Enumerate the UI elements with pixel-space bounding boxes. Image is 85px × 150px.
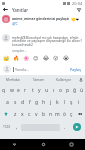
staticText: y <box>38 87 41 94</box>
staticText: Paylaş <box>70 67 81 72</box>
staticText: x <box>21 111 24 118</box>
button[interactable]: k <box>54 96 61 108</box>
staticText: ü <box>80 87 84 94</box>
staticText: 20:04 <box>72 1 83 6</box>
button[interactable]: Back <box>2 6 9 13</box>
button[interactable]: Send <box>69 120 85 134</box>
button[interactable]: z <box>11 108 19 120</box>
staticText: 🔥 <box>13 55 20 61</box>
staticText: z <box>14 111 17 118</box>
button[interactable]: Recents <box>57 139 85 150</box>
button[interactable]: , <box>12 120 21 134</box>
staticText: ç <box>70 111 73 118</box>
button[interactable]: j <box>47 96 54 108</box>
staticText: 😊 <box>33 55 39 61</box>
staticText: l <box>64 99 66 106</box>
button[interactable]: Home <box>29 139 57 150</box>
button[interactable]: Merhaba <box>0 75 26 84</box>
button[interactable]: Backspace <box>75 108 85 120</box>
staticText: Yanıtla... <box>15 67 30 72</box>
staticText: ı <box>53 87 55 94</box>
button[interactable]: Reaction <box>21 53 31 63</box>
button[interactable]: Reaction <box>41 53 51 63</box>
button[interactable]: Kullanıyor <box>51 75 76 84</box>
button[interactable]: Reaction <box>1 53 11 63</box>
button[interactable]: Back <box>0 139 29 150</box>
button[interactable]: ı <box>50 84 57 96</box>
button[interactable]: Reaction <box>51 53 61 63</box>
staticText: 😮 <box>53 55 59 61</box>
button[interactable]: ş <box>68 96 75 108</box>
button[interactable]: w <box>8 84 15 96</box>
staticText: b <box>42 111 46 118</box>
button[interactable]: Tamam <box>26 75 51 84</box>
button[interactable]: a <box>3 96 11 108</box>
button[interactable]: q <box>0 84 8 96</box>
button[interactable]: r <box>22 84 29 96</box>
button[interactable]: Reaction <box>61 53 71 63</box>
staticText: , <box>16 124 18 131</box>
button[interactable]: v <box>33 108 40 120</box>
button[interactable]: f <box>26 96 33 108</box>
button[interactable]: ü <box>78 84 85 96</box>
button[interactable]: o <box>57 84 64 96</box>
staticText: 👑 <box>3 55 10 61</box>
button[interactable]: d <box>19 96 26 108</box>
button[interactable]: ö <box>61 108 68 120</box>
staticText: e <box>17 87 20 94</box>
staticText: r <box>24 87 27 94</box>
button[interactable]: n <box>47 108 54 120</box>
staticText: q <box>2 87 6 94</box>
staticText: t <box>32 87 34 94</box>
staticText: anime_mimar gönderinizi paylaştı <box>12 16 70 21</box>
button[interactable]: Reaction <box>11 53 21 63</box>
button[interactable]: i <box>75 96 82 108</box>
staticText: v <box>35 111 38 118</box>
button[interactable]: ğ <box>71 84 78 96</box>
staticText: p <box>66 87 70 94</box>
button[interactable]: Voice input <box>76 75 85 84</box>
button[interactable]: ç <box>68 108 75 120</box>
staticText: m <box>55 111 60 118</box>
staticText: k <box>56 99 59 106</box>
button[interactable]: s <box>11 96 19 108</box>
button[interactable]: u <box>43 84 50 96</box>
staticText: 😂 <box>43 55 50 61</box>
button[interactable]: b <box>40 108 47 120</box>
staticText: ö <box>63 111 67 118</box>
button[interactable]: Filter <box>75 6 82 13</box>
button[interactable]: Reaction <box>31 53 41 63</box>
button[interactable]: c <box>26 108 33 120</box>
staticText: o <box>59 87 63 94</box>
staticText: 4J'C <box>12 22 18 26</box>
staticText: Kullanıyor <box>56 78 72 82</box>
staticText: s <box>14 99 17 106</box>
button[interactable]: h <box>40 96 47 108</box>
staticText: ?123 <box>3 125 10 129</box>
button[interactable]: g <box>33 96 40 108</box>
button[interactable]: . <box>60 120 69 134</box>
staticText: u <box>45 87 49 94</box>
button[interactable]: p <box>64 84 71 96</box>
staticText: i <box>78 99 80 106</box>
button[interactable]: t <box>29 84 36 96</box>
button[interactable]: l <box>61 96 68 108</box>
button[interactable]: Paylaş <box>69 65 82 74</box>
button[interactable]: m <box>54 108 61 120</box>
staticText: cevapları... <box>12 49 27 53</box>
button[interactable]: x <box>19 108 26 120</box>
staticText: mefedZElBunuhod mi çok hazandan, efrskt … <box>12 35 84 47</box>
staticText: 💛❤ <box>71 17 79 21</box>
staticText: w <box>10 87 14 94</box>
staticText: a <box>6 99 9 106</box>
button[interactable]: y <box>36 84 43 96</box>
button[interactable]: ?123 <box>0 120 12 134</box>
staticText: 🌸 <box>23 55 30 61</box>
button[interactable]: e <box>15 84 22 96</box>
staticText: g <box>35 99 39 106</box>
staticText: ş <box>70 99 73 106</box>
button[interactable]: Shift <box>0 108 11 120</box>
staticText: f <box>29 99 31 106</box>
staticText: c <box>28 111 31 118</box>
